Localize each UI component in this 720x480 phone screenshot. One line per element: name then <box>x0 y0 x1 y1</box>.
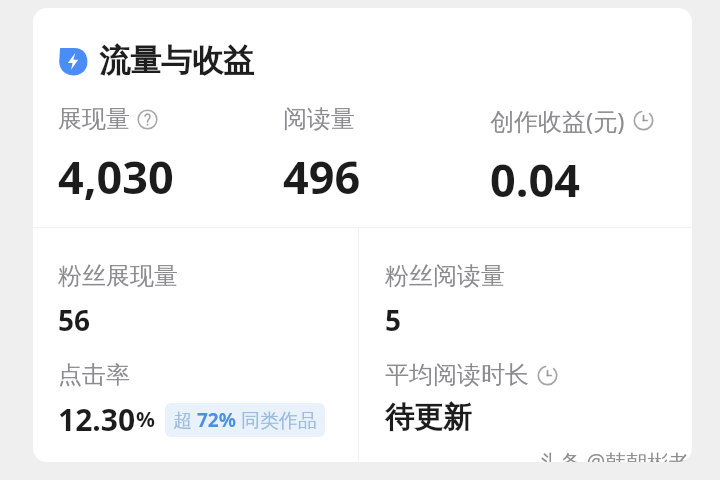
button[interactable]: 平均阅读时长 <box>385 360 558 436</box>
staticText: 5 <box>385 301 402 339</box>
staticText: 创作收益(元) <box>490 104 625 137</box>
other: 待更新 <box>537 365 558 386</box>
staticText: 待更新 <box>385 399 472 436</box>
other: 流量与收益 <box>58 46 88 76</box>
button[interactable]: 阅读量 <box>283 104 361 207</box>
staticText: 阅读量 <box>283 104 355 134</box>
staticText: 同类作品 <box>236 407 317 433</box>
staticText: 粉丝展现量 <box>58 261 178 291</box>
staticText: 4,030 <box>58 146 174 207</box>
staticText: 头条 @韩朝彬老师 <box>539 448 692 462</box>
staticText: 56 <box>58 301 91 339</box>
button[interactable]: 展现量 <box>58 104 174 207</box>
staticText: 粉丝阅读量 <box>385 261 505 291</box>
staticText: 流量与收益 <box>99 41 254 80</box>
button[interactable]: 创作收益(元) <box>490 104 654 210</box>
staticText: 496 <box>283 146 361 207</box>
staticText: 平均阅读时长 <box>385 360 529 390</box>
staticText: 12.30 <box>58 399 136 440</box>
button[interactable]: 点击率 <box>58 360 325 440</box>
staticText: 超 <box>173 407 197 433</box>
button[interactable]: 超 <box>165 403 325 437</box>
staticText: 点击率 <box>58 360 130 390</box>
staticText: % <box>136 405 155 434</box>
button[interactable]: 流量与收益 <box>58 41 254 80</box>
other: 待更新 <box>633 110 654 131</box>
staticText: 展现量 <box>58 104 130 134</box>
other: 说明 <box>137 109 158 130</box>
button[interactable]: 粉丝展现量 <box>58 261 178 339</box>
button[interactable]: 粉丝阅读量 <box>385 261 505 339</box>
staticText: 0.04 <box>490 149 580 210</box>
staticText: 72% <box>197 407 236 433</box>
